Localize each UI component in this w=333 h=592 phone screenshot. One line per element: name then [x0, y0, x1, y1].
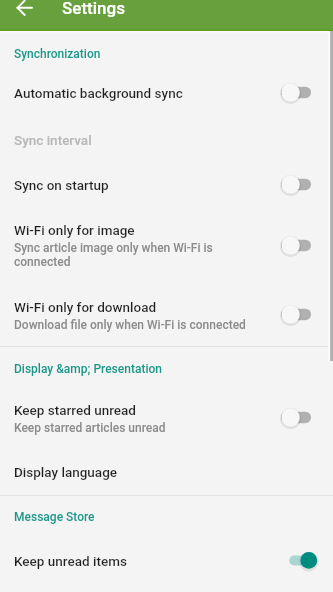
button[interactable]: Keep unread items — [0, 533, 333, 589]
staticText: Display &amp; Presentation — [14, 362, 162, 376]
button[interactable]: Toggle off — [281, 80, 319, 106]
staticText: Sync interval — [14, 132, 92, 148]
button[interactable]: Automatic background sync — [0, 70, 333, 116]
staticText: Sync on startup — [14, 177, 109, 193]
staticText: Settings — [62, 0, 125, 18]
button[interactable]: Toggle on — [281, 548, 319, 574]
staticText: Download file only when Wi-Fi is connect… — [14, 318, 246, 332]
button[interactable]: Display language — [0, 449, 333, 495]
staticText: Message Store — [14, 510, 95, 524]
staticText: Keep unread items — [14, 553, 127, 569]
staticText: Wi-Fi only for download — [14, 299, 157, 315]
button[interactable]: Toggle off — [281, 233, 319, 259]
button[interactable]: Toggle off — [281, 172, 319, 198]
button[interactable]: Toggle off — [281, 302, 319, 328]
staticText: Sync article image only when Wi-Fi is co… — [14, 241, 256, 269]
button[interactable]: Toggle off — [281, 405, 319, 431]
button[interactable]: Keep starred unread — [0, 387, 333, 449]
staticText: Synchronization — [14, 47, 101, 61]
staticText: Keep starred unread — [14, 402, 136, 418]
staticText: Display language — [14, 464, 118, 480]
staticText: Keep starred articles unread — [14, 421, 166, 435]
staticText: Automatic background sync — [14, 85, 183, 101]
staticText: Wi-Fi only for image — [14, 222, 135, 238]
button[interactable]: Wi-Fi only for download — [0, 284, 333, 346]
button[interactable]: Wi-Fi only for image — [0, 207, 333, 284]
button[interactable]: Sync interval — [0, 116, 333, 163]
button[interactable]: Sync on startup — [0, 163, 333, 207]
button[interactable]: Back — [0, 0, 50, 31]
